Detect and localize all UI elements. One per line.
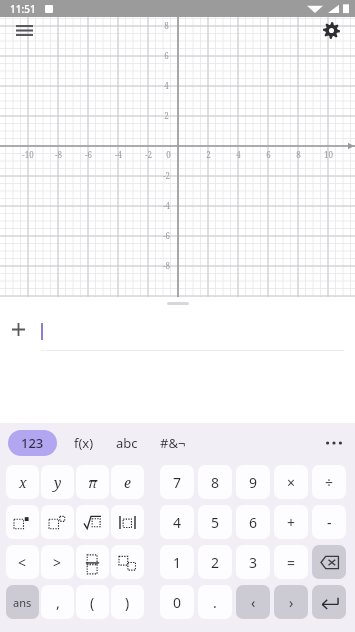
button[interactable]: Backspace — [312, 545, 346, 579]
button[interactable]: Enter — [312, 585, 346, 619]
button[interactable]: 4 — [160, 505, 194, 539]
staticText: ans — [13, 595, 32, 610]
staticText: 0 — [173, 593, 182, 612]
button[interactable]: ÷ — [312, 465, 346, 499]
button[interactable]: Add expression — [5, 316, 31, 342]
staticText: x — [19, 473, 27, 492]
staticText: + — [287, 513, 296, 532]
button[interactable]: Menu — [6, 12, 42, 48]
button[interactable]: f(x) — [63, 429, 105, 457]
staticText: abc — [116, 434, 138, 452]
staticText: π — [88, 473, 98, 492]
staticText: = — [287, 553, 296, 572]
button[interactable]: > — [41, 545, 74, 579]
button[interactable]: 6 — [236, 505, 270, 539]
staticText: 1 — [173, 553, 182, 572]
staticText: 4 — [173, 513, 182, 532]
staticText: -4 — [163, 200, 170, 211]
staticText: ÷ — [325, 473, 334, 492]
staticText: ‹ — [251, 593, 256, 612]
button[interactable]: 123 — [8, 430, 57, 456]
button[interactable]: × — [274, 465, 308, 499]
button[interactable]: . — [198, 585, 232, 619]
button[interactable]: < — [6, 545, 39, 579]
button[interactable]: ( — [76, 585, 109, 619]
staticText: 5 — [211, 513, 220, 532]
staticText: › — [289, 593, 294, 612]
button[interactable]: ans — [6, 585, 39, 619]
staticText: - — [327, 513, 332, 532]
staticText: #&¬ — [160, 434, 186, 452]
button[interactable]: Subscript — [111, 545, 144, 579]
staticText: y — [54, 473, 62, 492]
staticText: , — [56, 593, 60, 612]
staticText: -6 — [163, 230, 170, 241]
staticText: . — [213, 593, 217, 612]
staticText: × — [287, 473, 296, 492]
staticText: 2 — [211, 553, 220, 572]
button[interactable]: 8 — [198, 465, 232, 499]
staticText: 10 — [324, 149, 333, 160]
staticText: -8 — [163, 260, 170, 271]
staticText: > — [53, 553, 62, 572]
staticText: -2 — [145, 149, 152, 160]
button[interactable]: Square root — [76, 505, 109, 539]
staticText: < — [18, 553, 27, 572]
button[interactable]: , — [41, 585, 74, 619]
button[interactable]: Fraction — [76, 545, 109, 579]
staticText: 6 — [266, 149, 271, 160]
staticText: 3 — [249, 553, 258, 572]
button[interactable]: Square — [6, 505, 39, 539]
button[interactable]: Absolute value — [111, 505, 144, 539]
staticText: -4 — [115, 149, 122, 160]
staticText: -8 — [55, 149, 62, 160]
staticText: 123 — [21, 434, 44, 452]
button[interactable]: 2 — [198, 545, 232, 579]
staticText: -6 — [85, 149, 92, 160]
button[interactable]: π — [76, 465, 109, 499]
button[interactable]: 0 — [160, 585, 194, 619]
staticText: 6 — [164, 50, 169, 61]
button[interactable]: › — [274, 585, 308, 619]
button[interactable]: More options — [319, 428, 349, 458]
staticText: 4 — [236, 149, 241, 160]
button[interactable]: abc — [105, 429, 149, 457]
staticText: 6 — [249, 513, 258, 532]
staticText: 9 — [249, 473, 258, 492]
staticText: -10 — [22, 149, 34, 160]
button[interactable]: ) — [111, 585, 144, 619]
staticText: 0 — [166, 149, 171, 160]
button[interactable]: Settings — [313, 12, 349, 48]
button[interactable]: Power — [41, 505, 74, 539]
staticText: 8 — [296, 149, 301, 160]
staticText: 11:51 — [10, 2, 36, 16]
staticText: 2 — [206, 149, 211, 160]
staticText: -2 — [163, 170, 170, 181]
button[interactable]: y — [41, 465, 74, 499]
staticText: ( — [90, 593, 95, 612]
button[interactable]: ‹ — [236, 585, 270, 619]
staticText: 8 — [211, 473, 220, 492]
staticText: 7 — [173, 473, 182, 492]
button[interactable]: 9 — [236, 465, 270, 499]
staticText: 4 — [164, 80, 169, 91]
button[interactable]: = — [274, 545, 308, 579]
button[interactable]: 1 — [160, 545, 194, 579]
button[interactable]: #&¬ — [149, 429, 197, 457]
staticText: 8 — [164, 20, 169, 31]
button[interactable]: 5 — [198, 505, 232, 539]
button[interactable]: 3 — [236, 545, 270, 579]
button[interactable]: x — [6, 465, 39, 499]
button[interactable]: - — [312, 505, 346, 539]
button[interactable]: e — [111, 465, 144, 499]
button[interactable]: 7 — [160, 465, 194, 499]
staticText: f(x) — [74, 434, 94, 452]
staticText: e — [124, 473, 131, 492]
staticText: ) — [125, 593, 130, 612]
button[interactable]: + — [274, 505, 308, 539]
staticText: 2 — [164, 110, 169, 121]
